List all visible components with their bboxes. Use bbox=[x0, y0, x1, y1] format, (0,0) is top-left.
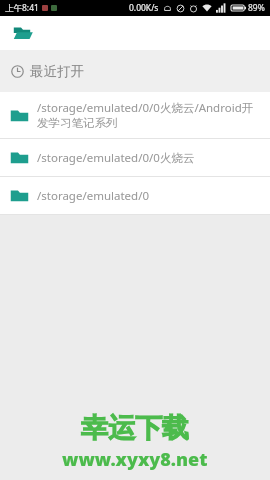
button[interactable]: /storage/emulated/0 bbox=[0, 177, 270, 214]
staticText: 89% bbox=[248, 2, 265, 14]
staticText: 0.00K/s bbox=[129, 2, 159, 14]
staticText: /storage/emulated/0/0火烧云/Android开发学习笔记系列 bbox=[37, 100, 258, 131]
button[interactable]: /storage/emulated/0/0火烧云/Android开发学习笔记系列 bbox=[0, 92, 270, 138]
staticText: 最近打开 bbox=[30, 63, 84, 80]
staticText: /storage/emulated/0/0火烧云 bbox=[37, 150, 258, 166]
button[interactable]: /storage/emulated/0/0火烧云 bbox=[0, 139, 270, 176]
staticText: www.xyxy8.net bbox=[62, 447, 208, 472]
staticText: 上午8:41 bbox=[5, 2, 39, 14]
staticText: /storage/emulated/0 bbox=[37, 188, 258, 204]
staticText: 幸运下载 bbox=[81, 411, 189, 445]
button[interactable]: Open folder bbox=[10, 20, 36, 46]
